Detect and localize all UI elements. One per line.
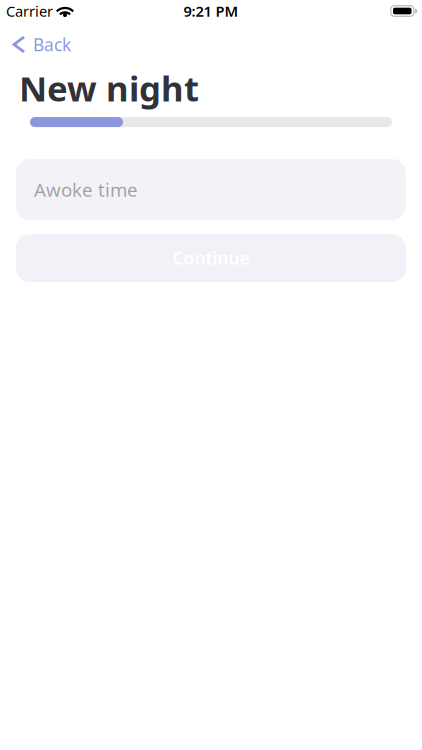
staticText: Awoke time <box>34 177 138 202</box>
staticText: Continue <box>172 246 249 269</box>
button[interactable]: Back <box>0 22 71 56</box>
staticText: Back <box>33 33 71 56</box>
staticText: Carrier <box>6 1 53 21</box>
button[interactable]: Awoke time <box>16 159 406 220</box>
staticText: New night <box>19 65 199 111</box>
staticText: 9:21 PM <box>183 1 238 21</box>
